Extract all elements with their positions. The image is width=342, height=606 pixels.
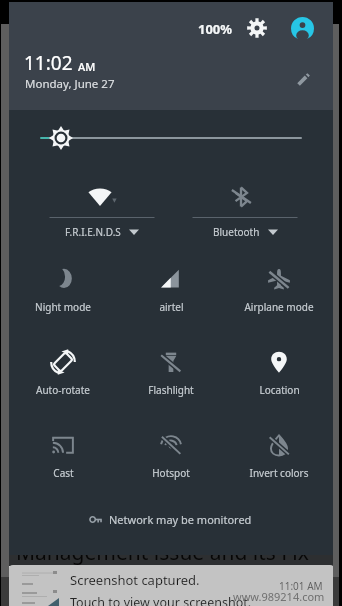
button[interactable]: Flashlight xyxy=(117,336,225,398)
button[interactable]: Location xyxy=(225,336,333,398)
button[interactable]: Auto-rotate xyxy=(9,336,117,398)
staticText: 11:01 AM xyxy=(279,579,323,593)
button[interactable]: Screenshot captured. xyxy=(9,565,334,606)
staticText: Monday, June 27 xyxy=(25,76,115,92)
button[interactable]: Bluetooth xyxy=(191,178,299,246)
button[interactable]: Brightness xyxy=(9,120,333,156)
staticText: Cast xyxy=(53,466,74,480)
staticText: Airplane mode xyxy=(244,300,314,314)
staticText: 100% xyxy=(198,20,233,38)
staticText: Touch to view your screenshot. xyxy=(70,594,252,606)
button[interactable]: Network may be monitored xyxy=(9,506,333,532)
button[interactable]: 11:02 xyxy=(24,50,96,76)
staticText: Bluetooth xyxy=(213,225,260,239)
staticText: Night mode xyxy=(35,300,91,314)
button[interactable]: F.R.I.E.N.D.S xyxy=(48,178,156,246)
staticText: AM xyxy=(78,59,96,74)
staticText: Auto-rotate xyxy=(36,383,90,397)
staticText: Management issue and its Fix xyxy=(16,538,309,567)
staticText: www.989214.com xyxy=(233,589,325,604)
staticText: Screenshot captured. xyxy=(70,571,200,589)
button[interactable]: airtel xyxy=(117,253,225,315)
staticText: Invert colors xyxy=(249,466,309,480)
staticText: Network may be monitored xyxy=(109,512,252,527)
button[interactable]: Settings xyxy=(245,16,269,40)
staticText: F.R.I.E.N.D.S xyxy=(65,225,121,239)
staticText: 11:02 xyxy=(24,50,73,76)
staticText: Hotspot xyxy=(152,466,190,480)
staticText: Flashlight xyxy=(148,383,194,397)
button[interactable]: User profile xyxy=(291,17,314,40)
button[interactable]: Invert colors xyxy=(225,419,333,481)
staticText: Location xyxy=(259,383,300,397)
button[interactable]: Edit quick settings xyxy=(292,68,314,90)
button[interactable]: 100% xyxy=(198,20,233,38)
button[interactable]: Cast xyxy=(9,419,117,481)
staticText: airtel xyxy=(159,300,184,314)
button[interactable]: Hotspot xyxy=(117,419,225,481)
button[interactable]: Night mode xyxy=(9,253,117,315)
button[interactable]: Airplane mode xyxy=(225,253,333,315)
